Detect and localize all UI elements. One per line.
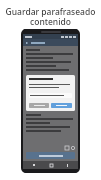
button[interactable]: Back: [23, 39, 78, 46]
button[interactable]: Recents: [29, 161, 39, 169]
other: Back: [25, 41, 29, 45]
button[interactable]: [51, 103, 72, 108]
button[interactable]: [26, 152, 75, 159]
button[interactable]: [29, 103, 49, 108]
button[interactable]: Copy: [65, 146, 69, 150]
button[interactable]: Share: [71, 146, 75, 150]
staticText: Guardar parafraseado contenido: [0, 6, 101, 28]
button[interactable]: [29, 93, 72, 98]
button[interactable]: Back: [62, 161, 72, 169]
button[interactable]: Home: [46, 161, 56, 169]
